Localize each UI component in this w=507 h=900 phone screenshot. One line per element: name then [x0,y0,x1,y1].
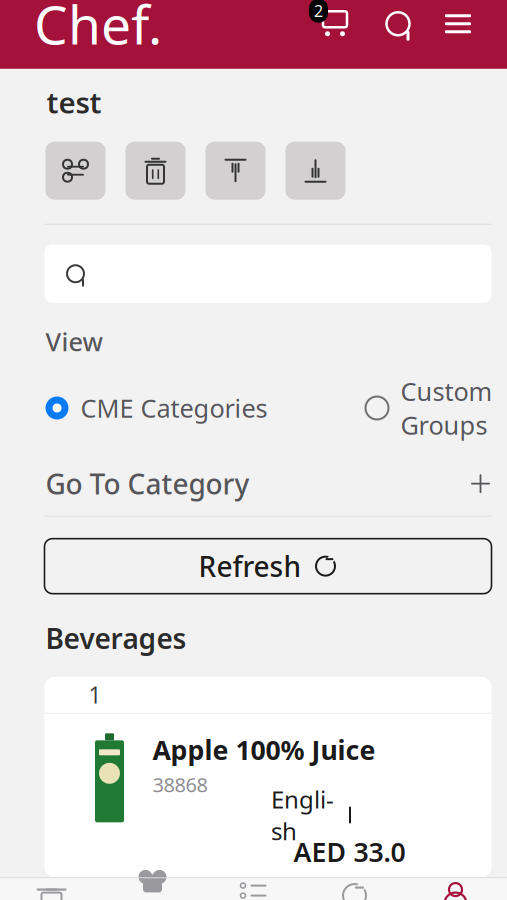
staticText: 38868 [152,771,207,798]
staticText: English [271,783,334,847]
staticText: Apple 100% Juice [152,732,375,767]
staticText: Go To Category [45,465,249,502]
button[interactable]: Go To Category [45,464,492,504]
button[interactable]: Refresh [44,539,491,594]
button[interactable]: Account [405,877,506,900]
button[interactable]: Download [285,142,345,200]
staticText: CME Categories [80,391,267,425]
button[interactable]: English [253,792,373,838]
staticText: test [46,83,101,122]
staticText: Custom Groups [400,374,492,442]
staticText: Refresh [198,548,301,585]
button[interactable]: Home [1,877,102,900]
button[interactable]: CME Categories [45,391,267,425]
button[interactable]: Search [373,0,423,49]
button[interactable]: Custom Groups [365,374,492,442]
button[interactable]: Upload [205,142,265,200]
button[interactable]: Orders [304,877,405,900]
button[interactable]: OrderGuide [102,877,203,900]
button[interactable]: Menu [433,0,483,49]
staticText: 1 [88,680,101,710]
staticText: Chef. [34,0,162,60]
button[interactable]: Share [45,142,105,200]
button[interactable]: Cart, 2 items [309,0,361,49]
staticText: Beverages [45,620,186,657]
button[interactable]: Category [203,877,304,900]
staticText: View [45,325,102,358]
button[interactable]: 1 [44,677,491,877]
button[interactable] [44,245,491,303]
staticText: 2 [314,0,323,21]
staticText: AED 33.0 [293,834,405,869]
button[interactable]: Delete [125,142,185,200]
